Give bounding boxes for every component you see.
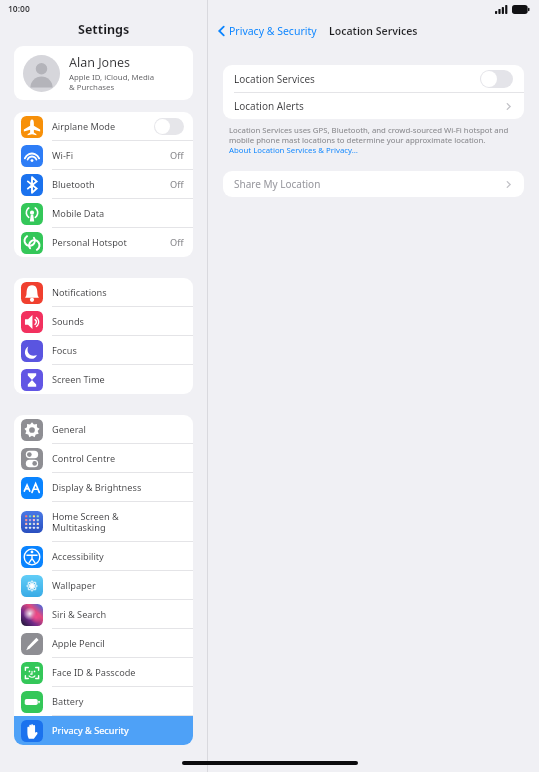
staticText: Settings (78, 21, 130, 38)
staticText: Focus (52, 344, 77, 357)
button[interactable]: Display & Brightness (14, 473, 193, 502)
button[interactable]: Location Alerts (223, 93, 524, 119)
button[interactable]: Home Screen & Multitasking (14, 502, 193, 542)
button[interactable]: Notifications (14, 278, 193, 307)
button[interactable]: Share My Location (223, 171, 524, 197)
staticText: Location Services uses GPS, Bluetooth, a… (229, 125, 518, 145)
button[interactable]: Airplane Mode (14, 112, 193, 141)
staticText: Face ID & Passcode (52, 666, 136, 679)
staticText: Display & Brightness (52, 481, 142, 494)
button[interactable]: Apple Pencil (14, 629, 193, 658)
staticText: Accessibility (52, 550, 104, 563)
staticText: Control Centre (52, 452, 116, 465)
staticText: Privacy & Security (229, 24, 317, 38)
staticText: Alan Jones (69, 54, 130, 71)
staticText: Mobile Data (52, 207, 105, 220)
staticText: Share My Location (234, 177, 504, 191)
button[interactable]: Location Services toggle (480, 70, 513, 88)
staticText: 10:00 (8, 3, 30, 15)
staticText: Screen Time (52, 373, 105, 386)
button[interactable]: Sounds (14, 307, 193, 336)
staticText: Battery (52, 695, 84, 708)
button[interactable]: Battery (14, 687, 193, 716)
staticText: Location Services (234, 72, 480, 86)
staticText: Sounds (52, 315, 85, 328)
staticText: Off (170, 236, 184, 249)
staticText: Notifications (52, 286, 107, 299)
staticText: Airplane Mode (52, 120, 116, 133)
staticText: Apple Pencil (52, 637, 105, 650)
staticText: General (52, 423, 86, 436)
button[interactable]: General (14, 415, 193, 444)
button[interactable]: Siri & Search (14, 600, 193, 629)
button[interactable]: Screen Time (14, 365, 193, 394)
button[interactable]: Mobile Data (14, 199, 193, 228)
staticText: Home Screen & Multitasking (52, 510, 119, 534)
staticText: Personal Hotspot (52, 236, 127, 249)
button[interactable]: Airplane Mode toggle (154, 118, 184, 135)
staticText: Privacy & Security (52, 724, 129, 737)
button[interactable]: Alan Jones (14, 46, 193, 100)
button[interactable]: Focus (14, 336, 193, 365)
button[interactable]: Bluetooth (14, 170, 193, 199)
button[interactable]: Wallpaper (14, 571, 193, 600)
button[interactable]: Personal Hotspot (14, 228, 193, 257)
staticText: Bluetooth (52, 178, 95, 191)
staticText: Off (170, 149, 184, 162)
button[interactable]: Privacy & Security (14, 716, 193, 745)
button[interactable]: Accessibility (14, 542, 193, 571)
staticText: Location Services (329, 24, 418, 38)
button[interactable]: Wi-Fi (14, 141, 193, 170)
staticText: Apple ID, iCloud, Media & Purchases (69, 72, 155, 92)
staticText: Siri & Search (52, 608, 107, 621)
staticText: Off (170, 178, 184, 191)
button[interactable]: About Location Services & Privacy… (229, 145, 358, 156)
button[interactable]: Control Centre (14, 444, 193, 473)
button[interactable]: Privacy & Security (218, 24, 321, 38)
staticText: Location Alerts (234, 99, 504, 113)
staticText: About Location Services & Privacy… (229, 145, 358, 156)
button[interactable]: Location Services (223, 65, 524, 93)
button[interactable]: Face ID & Passcode (14, 658, 193, 687)
staticText: Wi-Fi (52, 149, 74, 162)
staticText: Wallpaper (52, 579, 96, 592)
